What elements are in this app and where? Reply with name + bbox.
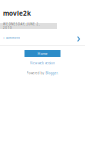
staticText: Blogger <box>45 71 57 75</box>
button[interactable]: 1 comment <box>0 0 20 40</box>
button[interactable]: Blogger <box>45 71 57 75</box>
button[interactable]: View web version <box>30 61 55 65</box>
staticText: movie2k <box>3 9 31 18</box>
button[interactable]: Next post <box>77 0 85 42</box>
staticText: Home <box>37 51 47 56</box>
staticText: Powered by <box>26 71 45 75</box>
button[interactable]: Home <box>24 50 60 57</box>
staticText: View web version <box>30 61 55 65</box>
staticText: 1 comment <box>3 36 20 40</box>
staticText: WEDNESDAY, JUNE 2, 2010 <box>3 22 40 30</box>
